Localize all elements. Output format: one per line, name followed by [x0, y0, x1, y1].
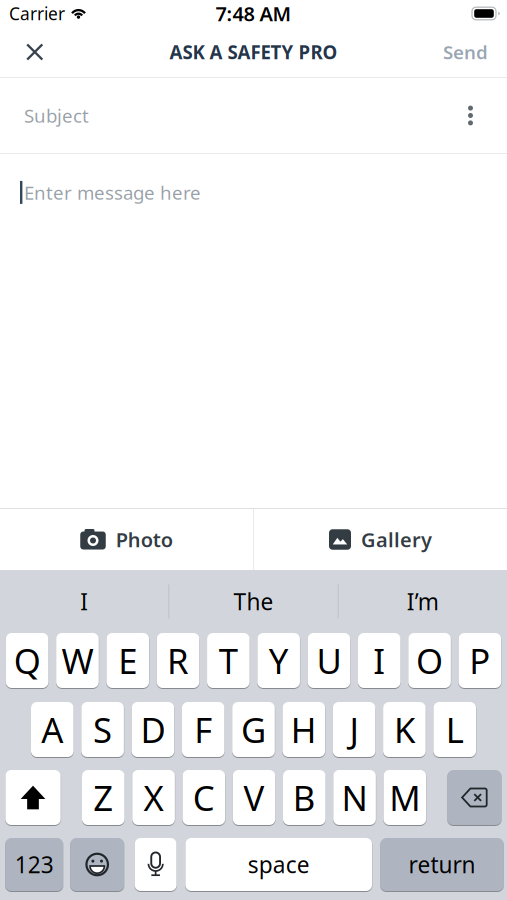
button[interactable]: H	[282, 702, 325, 757]
staticText: Q	[14, 637, 41, 683]
button[interactable]: Numbers	[5, 838, 63, 891]
button[interactable]: J	[333, 702, 375, 757]
staticText: Carrier	[9, 2, 65, 25]
staticText: Subject	[24, 103, 89, 128]
button[interactable]: I’m	[339, 570, 507, 633]
button[interactable]: M	[383, 770, 426, 825]
staticText: L	[446, 706, 464, 752]
button[interactable]: O	[408, 633, 451, 688]
staticText: I	[373, 637, 385, 683]
button[interactable]: Shift	[5, 770, 61, 825]
staticText: Photo	[116, 526, 173, 553]
staticText: H	[291, 706, 317, 752]
staticText: S	[93, 706, 112, 752]
staticText: Enter message here	[24, 180, 201, 205]
staticText: 123	[15, 849, 54, 879]
staticText: F	[194, 706, 212, 752]
staticText: R	[167, 637, 189, 683]
button[interactable]: C	[182, 770, 225, 825]
staticText: E	[118, 637, 137, 683]
staticText: T	[219, 637, 238, 683]
button[interactable]: W	[56, 633, 99, 688]
button[interactable]: More options	[468, 106, 507, 125]
button[interactable]: Photo	[0, 509, 253, 570]
button[interactable]: Send	[443, 40, 507, 64]
button[interactable]: The	[169, 570, 338, 633]
staticText: V	[244, 774, 265, 820]
button[interactable]: P	[459, 633, 501, 688]
staticText: J	[350, 706, 359, 752]
button[interactable]: Delete	[447, 770, 501, 825]
button[interactable]: Emoji	[70, 838, 124, 891]
staticText: K	[394, 706, 415, 752]
staticText: I	[80, 586, 88, 616]
button[interactable]: S	[81, 702, 124, 757]
staticText: C	[193, 774, 215, 820]
staticText: Y	[269, 637, 289, 683]
staticText: A	[41, 706, 63, 752]
button[interactable]: R	[157, 633, 199, 688]
button[interactable]: A	[31, 702, 74, 757]
button[interactable]: return	[380, 838, 503, 891]
staticText: G	[241, 706, 266, 752]
button[interactable]: B	[283, 770, 326, 825]
staticText: I’m	[407, 586, 439, 616]
button[interactable]: E	[106, 633, 149, 688]
button[interactable]: D	[132, 702, 174, 757]
button[interactable]: L	[433, 702, 476, 757]
staticText: U	[316, 637, 341, 683]
button[interactable]: space	[185, 838, 372, 891]
staticText: W	[61, 637, 93, 683]
button[interactable]: Close	[0, 43, 43, 61]
staticText: N	[342, 774, 368, 820]
button[interactable]: Gallery	[254, 509, 507, 570]
button[interactable]: V	[233, 770, 275, 825]
button[interactable]: K	[383, 702, 426, 757]
button[interactable]: X	[132, 770, 175, 825]
staticText: The	[233, 586, 273, 616]
button[interactable]: G	[232, 702, 275, 757]
button[interactable]: U	[308, 633, 350, 688]
staticText: space	[248, 849, 310, 879]
staticText: P	[469, 637, 490, 683]
staticText: O	[416, 637, 443, 683]
staticText: 7:48 AM	[215, 0, 291, 27]
staticText: Gallery	[361, 526, 432, 553]
staticText: Z	[93, 774, 113, 820]
button[interactable]: Dictate	[135, 838, 177, 891]
staticText: Send	[443, 40, 488, 64]
staticText: M	[389, 774, 420, 820]
button[interactable]: Y	[257, 633, 300, 688]
button[interactable]: F	[182, 702, 224, 757]
button[interactable]: I	[0, 570, 168, 633]
button[interactable]: Subject	[0, 78, 507, 153]
button[interactable]: Q	[6, 633, 48, 688]
button[interactable]: T	[207, 633, 250, 688]
button[interactable]: N	[333, 770, 376, 825]
staticText: D	[140, 706, 165, 752]
button[interactable]: I	[358, 633, 400, 688]
staticText: ASK A SAFETY PRO	[169, 40, 337, 64]
button[interactable]: Enter message here	[0, 154, 507, 213]
staticText: return	[408, 849, 475, 879]
button[interactable]: Z	[82, 770, 125, 825]
staticText: B	[293, 774, 316, 820]
staticText: X	[144, 774, 164, 820]
